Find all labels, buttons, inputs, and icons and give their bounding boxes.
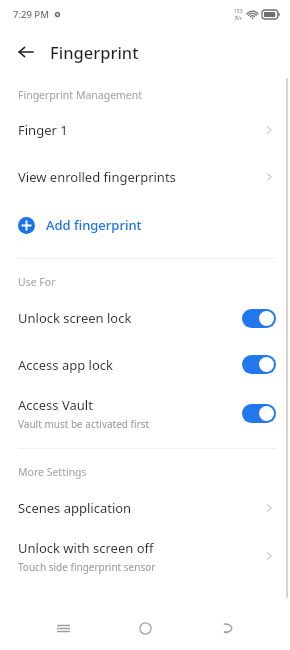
staticText: Touch side fingerprint sensor [18,560,156,574]
staticText: Fingerprint Management [18,88,143,102]
button[interactable]: Unlock screen lock [0,295,290,341]
staticText: Access app lock [18,356,114,374]
button[interactable]: Unlock with screen off [0,531,290,581]
button[interactable]: Add fingerprint [0,202,290,248]
button[interactable]: Home [125,608,165,648]
button[interactable]: Finger 1 [0,108,290,152]
button[interactable]: Toggle on [242,309,276,328]
button[interactable]: Toggle on [242,355,276,374]
button[interactable]: Toggle on [242,404,276,423]
button[interactable]: Access app lock [0,341,290,388]
staticText: View enrolled fingerprints [18,168,176,186]
staticText: Unlock with screen off [18,539,154,557]
staticText: Add fingerprint [46,216,142,234]
button[interactable]: Access Vault [0,388,290,438]
staticText: Use For [18,275,56,289]
staticText: More Settings [18,465,87,479]
staticText: Scenes application [18,499,132,517]
button[interactable]: Back [11,37,41,67]
staticText: Access Vault [18,396,93,414]
button[interactable]: View enrolled fingerprints [0,152,290,202]
staticText: Fingerprint [50,41,139,63]
button[interactable]: Back [208,608,248,648]
staticText: 7:29 PM [13,8,49,21]
staticText: B/s [235,15,242,21]
staticText: 153 [234,8,243,15]
button[interactable]: Recents [43,608,83,648]
staticText: Vault must be activated first [18,417,150,431]
button[interactable]: Scenes application [0,485,290,531]
staticText: Unlock screen lock [18,309,132,327]
staticText: Finger 1 [18,121,68,139]
